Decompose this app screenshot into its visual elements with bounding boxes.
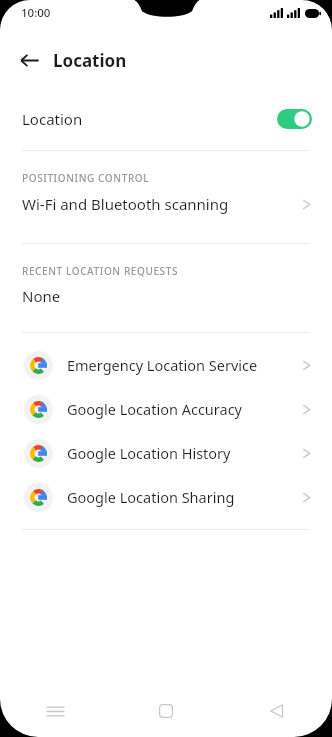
staticText: Google Location History [67,443,231,463]
button[interactable]: Recent apps [0,685,110,737]
button[interactable]: Emergency Location Service [0,343,332,387]
staticText: Emergency Location Service [67,355,258,375]
staticText: None [22,286,61,306]
button[interactable]: Google Location Accuracy [0,387,332,431]
button[interactable]: Location [0,102,332,136]
button[interactable] [277,109,312,129]
staticText: POSITIONING CONTROL [22,171,150,185]
button[interactable]: Home [110,685,221,737]
staticText: 10:00 [21,5,51,21]
staticText: Google Location Sharing [67,487,235,507]
button[interactable]: Google Location Sharing [0,475,332,519]
button[interactable]: Wi-Fi and Bluetooth scanning [0,185,332,223]
staticText: Location [22,109,83,129]
staticText: RECENT LOCATION REQUESTS [22,264,179,278]
button[interactable]: Back [12,44,46,76]
staticText: Google Location Accuracy [67,399,242,419]
button[interactable]: Google Location History [0,431,332,475]
other: Location toggle, on [277,109,312,129]
staticText: Location [53,49,127,72]
button[interactable]: Back [221,685,332,737]
staticText: Wi-Fi and Bluetooth scanning [22,194,229,214]
